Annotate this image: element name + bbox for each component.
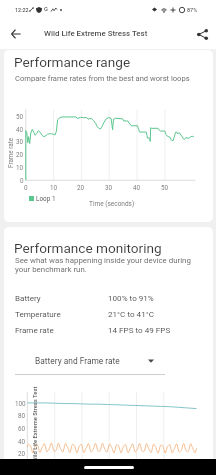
staticText: 0 — [20, 177, 24, 184]
staticText: 80 — [18, 412, 26, 419]
staticText: See what was happening inside your devic… — [15, 256, 191, 274]
staticText: 20 — [16, 151, 24, 158]
staticText: G — [44, 6, 48, 13]
button[interactable]: Share — [190, 22, 214, 46]
staticText: Temperature — [15, 309, 61, 318]
staticText: Performance monitoring — [14, 240, 162, 256]
staticText: Wild Life Extreme Stress Test — [44, 29, 148, 38]
staticText: 50 — [16, 113, 24, 120]
staticText: 100 — [15, 400, 26, 407]
staticText: 100% to 91% — [108, 293, 154, 302]
staticText: 10 — [16, 164, 24, 171]
staticText: 10 — [50, 184, 58, 191]
staticText: Wild Life Extreme Stress Test — [31, 386, 38, 459]
staticText: Frame rate — [15, 325, 54, 334]
staticText: 14 FPS to 49 FPS — [108, 325, 171, 334]
staticText: 60 — [18, 425, 26, 432]
staticText: 20 — [18, 450, 26, 457]
staticText: 20 — [77, 184, 85, 191]
staticText: 40 — [16, 126, 24, 133]
staticText: Time (seconds) — [89, 200, 135, 208]
staticText: 12:22 — [15, 7, 29, 13]
staticText: 50 — [161, 184, 169, 191]
staticText: 0 — [24, 184, 28, 191]
button[interactable]: Back — [4, 22, 28, 46]
staticText: Frame rate — [7, 137, 14, 168]
staticText: Compare frame rates from the best and wo… — [15, 74, 190, 83]
staticText: 30 — [105, 184, 113, 191]
button[interactable]: Battery and Frame rate — [15, 352, 165, 375]
staticText: Battery — [15, 293, 41, 302]
staticText: 87% — [187, 7, 198, 13]
staticText: 40 — [133, 184, 141, 191]
staticText: Loop 1 — [36, 195, 56, 203]
staticText: 40 — [18, 438, 26, 445]
staticText: 21°C to 41°C — [108, 309, 154, 318]
staticText: Battery and Frame rate — [35, 356, 120, 366]
staticText: Performance range — [14, 54, 131, 70]
staticText: 30 — [16, 138, 24, 145]
